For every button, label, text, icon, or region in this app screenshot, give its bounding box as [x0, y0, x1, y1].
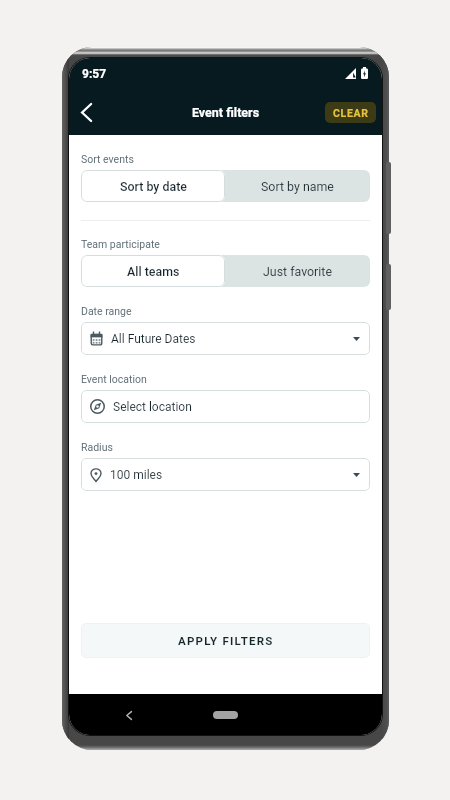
staticText: 100 miles [110, 468, 163, 482]
staticText: Just favorite [263, 264, 332, 279]
staticText: 9:57 [82, 67, 107, 81]
staticText: All teams [127, 264, 180, 279]
staticText: Event location [81, 373, 147, 385]
button[interactable]: APPLY FILTERS [81, 623, 370, 658]
button[interactable]: Sort by name [225, 170, 370, 202]
button[interactable]: CLEAR [325, 102, 376, 123]
staticText: Date range [81, 305, 132, 317]
button[interactable]: Back [117, 703, 141, 727]
staticText: Select location [113, 400, 192, 414]
button[interactable]: All Future Dates [81, 322, 370, 355]
button[interactable]: 100 miles [81, 458, 370, 491]
button[interactable]: Select location [81, 390, 370, 423]
button[interactable]: Back [69, 89, 103, 135]
button[interactable]: All teams [81, 255, 225, 287]
button[interactable]: Home [213, 711, 238, 719]
staticText: Sort by name [261, 179, 334, 194]
staticText: Event filters [192, 105, 260, 120]
staticText: All Future Dates [111, 332, 196, 346]
button[interactable]: Just favorite [225, 255, 370, 287]
staticText: APPLY FILTERS [178, 634, 274, 647]
staticText: CLEAR [333, 107, 369, 119]
staticText: Sort by date [120, 179, 187, 194]
staticText: Sort events [81, 153, 134, 165]
staticText: Radius [81, 441, 113, 453]
button[interactable]: Sort by date [81, 170, 225, 202]
staticText: Team participate [81, 238, 160, 250]
